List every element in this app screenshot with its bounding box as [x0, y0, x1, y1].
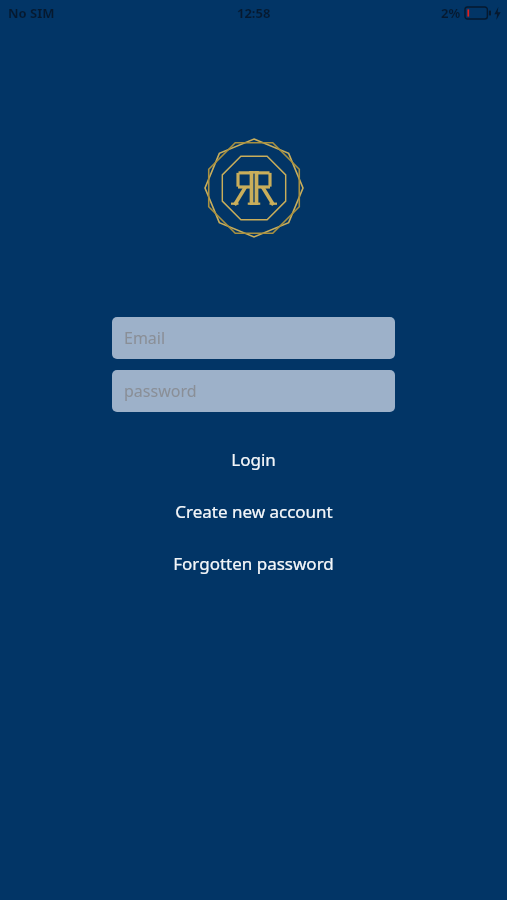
button[interactable]: Create new account [0, 491, 507, 532]
staticText: 12:58 [237, 4, 271, 22]
staticText: Forgotten password [173, 552, 334, 575]
button[interactable]: Login [0, 439, 507, 480]
staticText: password [124, 380, 197, 402]
staticText: Login [231, 448, 276, 471]
other: App logo [204, 138, 304, 238]
button[interactable]: password [112, 370, 395, 412]
staticText: No SIM [8, 4, 55, 22]
staticText: Create new account [175, 500, 333, 523]
button[interactable]: Email [112, 317, 395, 359]
staticText: Email [124, 327, 166, 349]
button[interactable]: Forgotten password [0, 543, 507, 584]
staticText: 2% [441, 4, 461, 22]
